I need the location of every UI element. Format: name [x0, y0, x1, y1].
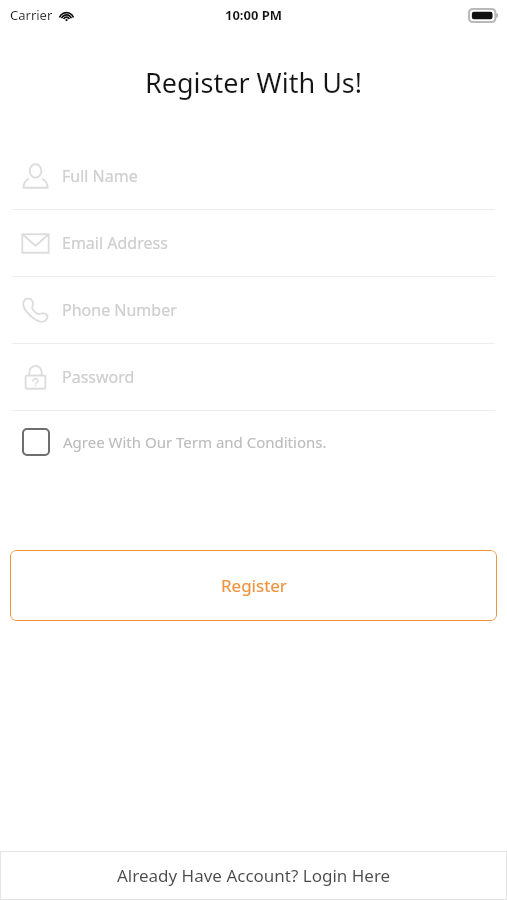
staticText: Password [62, 366, 135, 388]
button[interactable]: Register [10, 550, 497, 621]
staticText: Phone Number [62, 299, 177, 321]
staticText: Register With Us! [0, 64, 507, 101]
staticText: Agree With Our Term and Conditions. [63, 432, 327, 452]
button[interactable]: Email Address [0, 210, 507, 276]
button[interactable]: Phone Number [0, 277, 507, 343]
staticText: Register [221, 574, 287, 597]
staticText: Email Address [62, 232, 168, 254]
button[interactable]: Full Name [0, 143, 507, 209]
staticText: 10:00 PM [225, 6, 283, 24]
staticText: Full Name [62, 165, 138, 187]
button[interactable]: Already Have Account? Login Here [0, 851, 507, 900]
staticText: Carrier [10, 6, 53, 24]
staticText: Already Have Account? Login Here [117, 864, 391, 887]
button[interactable]: Agree With Our Term and Conditions. [0, 411, 507, 473]
button[interactable]: Password [0, 344, 507, 410]
